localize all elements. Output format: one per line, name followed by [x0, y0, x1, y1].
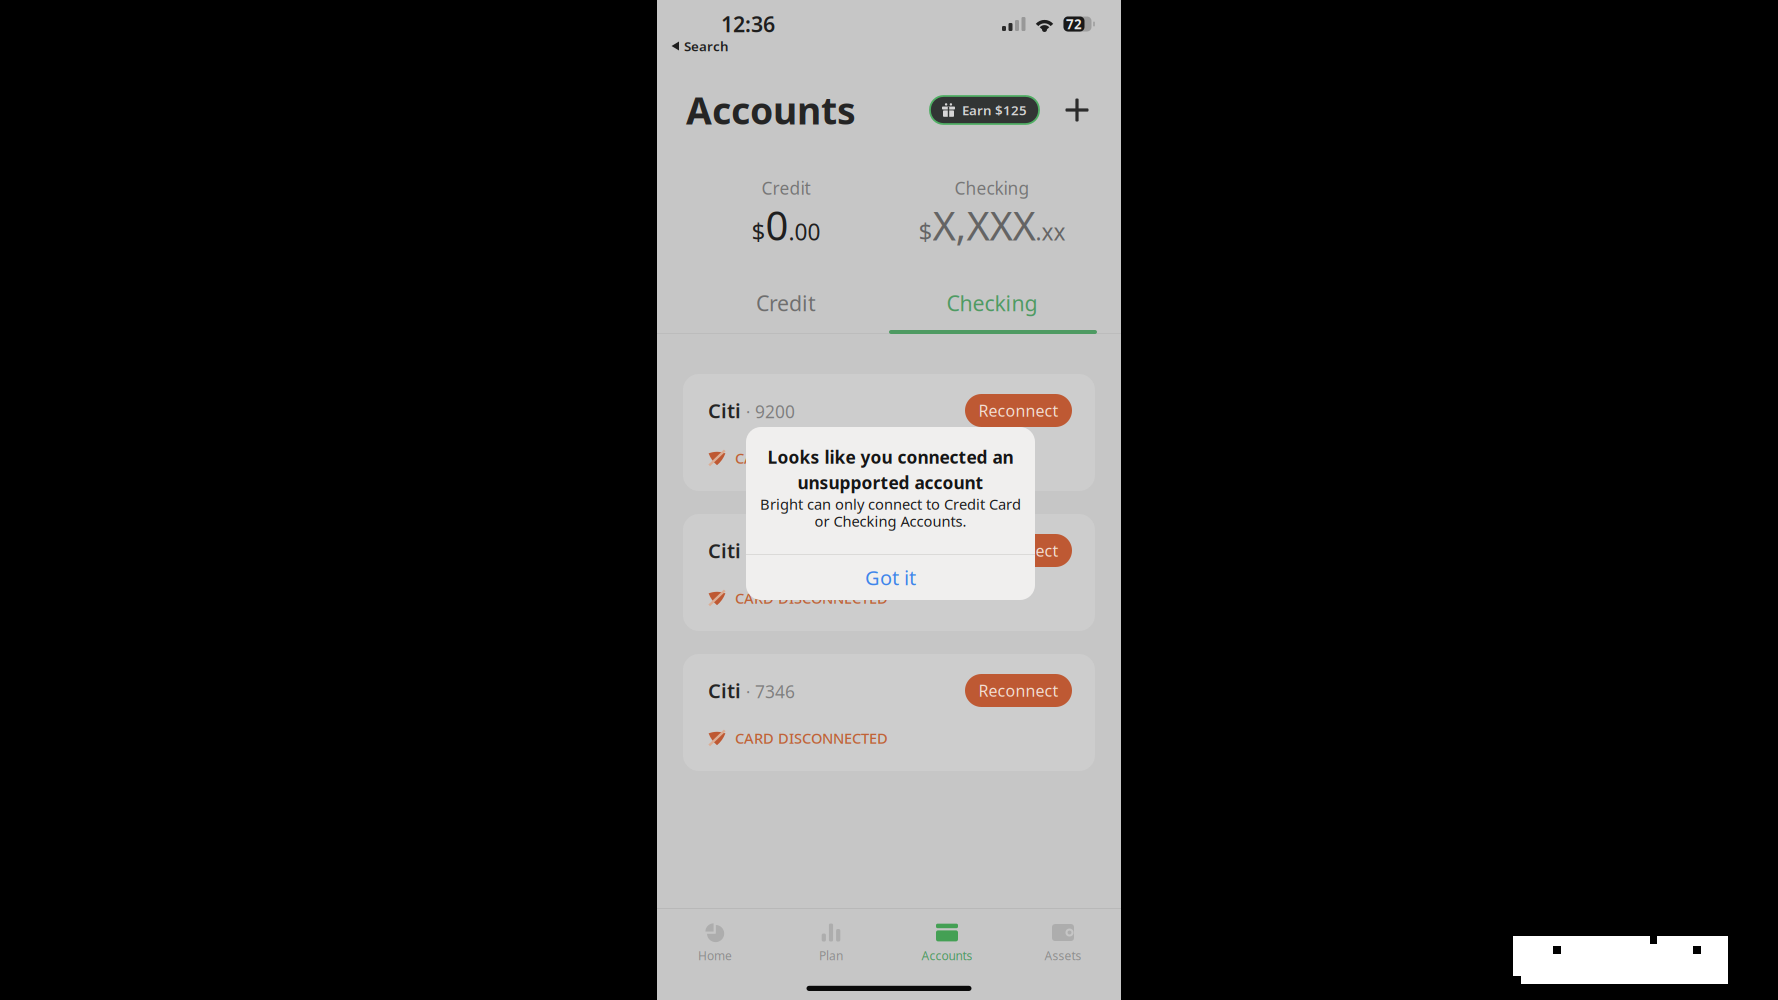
staticText: .00	[788, 217, 820, 247]
button[interactable]: Got it	[746, 555, 1035, 600]
staticText: $	[751, 215, 765, 247]
button[interactable]: Credit	[683, 283, 889, 330]
button[interactable]: Checking	[889, 283, 1095, 330]
staticText: .xx	[1035, 217, 1065, 247]
staticText: Plan	[819, 947, 843, 963]
staticText: Checking	[946, 289, 1037, 317]
staticText: Citi	[708, 397, 741, 424]
button[interactable]: Earn $125	[925, 91, 1055, 129]
staticText: unsupported account	[797, 471, 983, 494]
staticText: Credit	[761, 176, 810, 199]
staticText: Accounts	[686, 85, 856, 135]
staticText: Got it	[865, 564, 916, 591]
staticText: Reconnect	[978, 400, 1058, 421]
staticText: 0418	[755, 540, 795, 563]
staticText: Bright can only connect to Credit Card	[760, 494, 1021, 514]
staticText: Earn $125	[962, 101, 1027, 119]
staticText: Citi	[708, 537, 741, 564]
staticText: Search	[684, 37, 729, 55]
staticText: 9200	[755, 400, 795, 423]
staticText: X,XXX	[932, 198, 1035, 251]
staticText: Home	[698, 947, 732, 963]
staticText: Accounts	[921, 947, 972, 963]
button[interactable]: Citi	[683, 514, 1095, 631]
staticText: $	[918, 215, 932, 247]
button[interactable]: Citi	[683, 374, 1095, 491]
staticText: CARD DISCONNECTED	[735, 728, 888, 748]
staticText: ·	[746, 681, 750, 703]
button[interactable]: Home	[657, 919, 773, 967]
staticText: CARD DISCONNECTED	[735, 588, 888, 608]
staticText: Checking	[954, 176, 1029, 199]
staticText: Reconnect	[978, 680, 1058, 701]
staticText: ·	[746, 541, 750, 563]
staticText: Assets	[1044, 947, 1081, 963]
staticText: Reconnect	[978, 540, 1058, 561]
button[interactable]: Add account	[1055, 88, 1099, 132]
staticText: Citi	[708, 677, 741, 704]
staticText: 0	[765, 198, 788, 251]
staticText: or Checking Accounts.	[814, 511, 966, 531]
button[interactable]: Search	[671, 37, 729, 55]
button[interactable]: Assets	[1005, 919, 1121, 967]
staticText: Looks like you connected an	[767, 445, 1013, 468]
button[interactable]: Plan	[773, 919, 889, 967]
staticText: CARD DISCONNECTED	[735, 448, 888, 468]
staticText: 7346	[755, 680, 795, 703]
button[interactable]: Citi	[683, 654, 1095, 771]
button[interactable]: Accounts	[889, 919, 1005, 967]
staticText: 12:36	[721, 10, 775, 38]
staticText: 72	[1066, 15, 1082, 33]
staticText: Credit	[756, 289, 816, 317]
staticText: ·	[746, 401, 750, 423]
